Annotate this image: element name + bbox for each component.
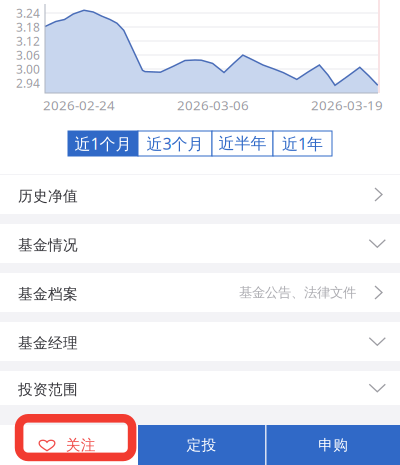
staticText: 3.24	[16, 5, 40, 21]
staticText: 基金情况	[18, 236, 78, 254]
staticText: 定投	[186, 436, 216, 454]
staticText: 2.94	[16, 75, 40, 91]
staticText: 关注	[66, 436, 96, 454]
staticText: 3.12	[16, 33, 40, 49]
button[interactable]: 关注	[0, 425, 138, 465]
staticText: 基金档案	[18, 285, 78, 303]
staticText: 近1个月	[74, 133, 131, 154]
button[interactable]: 近1个月	[68, 131, 138, 156]
staticText: 基金公告、法律文件	[239, 284, 356, 301]
staticText: 近3个月	[146, 133, 203, 154]
staticText: 2026-03-19	[311, 96, 383, 114]
staticText: 近1年	[282, 133, 323, 154]
staticText: 3.00	[16, 61, 40, 77]
button[interactable]: 定投	[138, 425, 265, 465]
button[interactable]: 近1年	[273, 131, 332, 156]
button[interactable]: 近3个月	[138, 131, 212, 156]
staticText: 3.06	[16, 47, 40, 63]
staticText: 历史净值	[18, 187, 78, 205]
staticText: 近半年	[218, 134, 266, 153]
staticText: 3.18	[16, 19, 40, 35]
button[interactable]: 基金情况	[0, 224, 400, 263]
button[interactable]: 投资范围	[0, 371, 400, 405]
button[interactable]: 近半年	[212, 131, 273, 156]
staticText: 基金经理	[18, 334, 78, 352]
button[interactable]: 申购	[266, 425, 400, 465]
button[interactable]: 基金档案	[0, 273, 400, 312]
button[interactable]: 历史净值	[0, 175, 400, 214]
staticText: 投资范围	[18, 380, 78, 398]
button[interactable]: 基金经理	[0, 322, 400, 361]
staticText: 申购	[318, 436, 348, 454]
staticText: 2026-02-24	[43, 96, 115, 114]
staticText: 2026-03-06	[177, 96, 249, 114]
